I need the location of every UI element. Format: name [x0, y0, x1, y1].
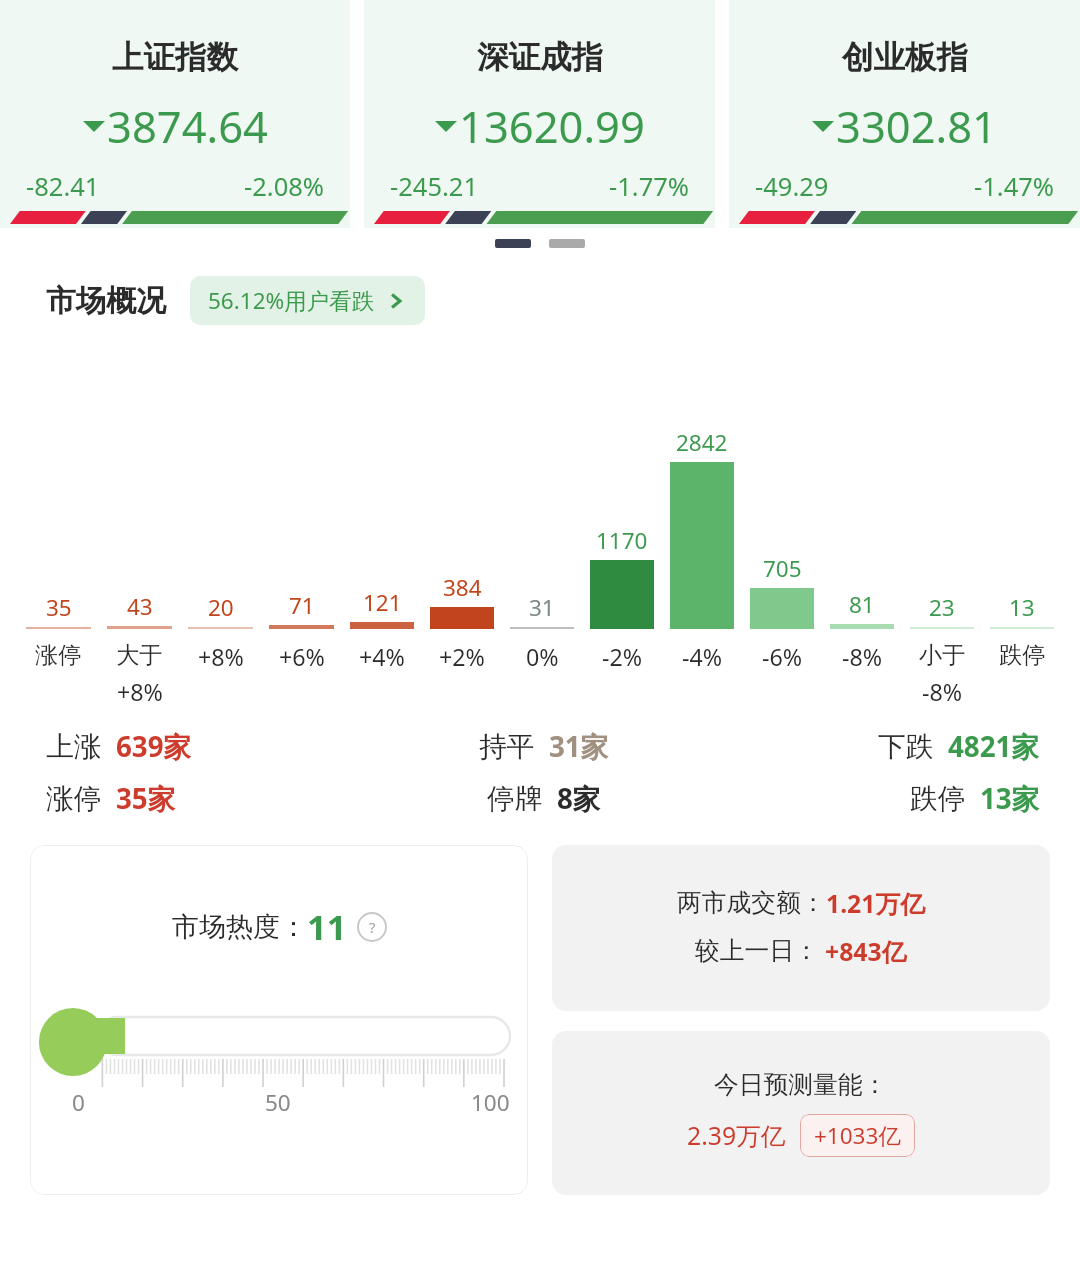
staticText: -1.47%: [974, 169, 1054, 204]
staticText: -49.29: [755, 169, 829, 204]
staticText: 3874.64: [107, 96, 268, 155]
staticText: +2%: [439, 641, 485, 673]
staticText: 35家: [116, 779, 176, 817]
staticText: 1170: [596, 525, 648, 556]
staticText: 小于: [919, 641, 966, 670]
staticText: 2.39万亿: [687, 1119, 786, 1153]
staticText: -2%: [602, 641, 643, 673]
staticText: +843亿: [825, 935, 907, 969]
staticText: 121: [363, 587, 402, 618]
staticText: 81: [849, 589, 875, 620]
staticText: 涨停: [46, 781, 102, 816]
staticText: 两市成交额：: [677, 887, 826, 918]
staticText: 跌停: [910, 781, 966, 816]
staticText: -2.08%: [244, 169, 324, 204]
button[interactable]: 上证指数: [0, 0, 350, 228]
staticText: 上涨: [46, 729, 102, 764]
staticText: 11: [307, 903, 347, 950]
button[interactable]: 创业板指: [729, 0, 1080, 228]
staticText: 20: [208, 592, 234, 623]
staticText: 13: [1009, 592, 1035, 623]
staticText: -6%: [762, 641, 803, 673]
staticText: 创业板指: [842, 38, 968, 78]
staticText: +1033亿: [814, 1120, 901, 1151]
button[interactable]: 深证成指: [364, 0, 715, 228]
staticText: 持平: [479, 729, 535, 764]
button[interactable]: 今日预测量能：: [552, 1031, 1050, 1195]
staticText: ?: [369, 917, 376, 937]
staticText: 50: [265, 1087, 291, 1118]
staticText: 1.21万亿: [826, 887, 925, 921]
staticText: -1.77%: [609, 169, 689, 204]
staticText: -8%: [922, 676, 963, 708]
staticText: 384: [443, 572, 482, 603]
staticText: +8%: [198, 641, 244, 673]
staticText: 56.12%用户看跌: [208, 285, 375, 316]
button[interactable]: 56.12%用户看跌: [190, 276, 425, 325]
staticText: 0%: [526, 641, 559, 673]
staticText: -82.41: [26, 169, 100, 204]
staticText: 705: [763, 553, 802, 584]
button[interactable]: 两市成交额：: [552, 845, 1050, 1011]
staticText: 100: [471, 1087, 510, 1118]
staticText: 35: [46, 592, 72, 623]
staticText: 跌停: [999, 641, 1046, 670]
staticText: 2842: [676, 427, 728, 458]
staticText: 大于: [116, 641, 163, 670]
staticText: 13家: [980, 779, 1040, 817]
staticText: 停牌: [487, 781, 543, 816]
staticText: 3302.81: [836, 96, 997, 155]
staticText: +8%: [117, 676, 163, 708]
staticText: 8家: [557, 779, 601, 817]
staticText: 4821家: [948, 727, 1040, 765]
staticText: +6%: [279, 641, 325, 673]
staticText: -4%: [682, 641, 723, 673]
staticText: 上证指数: [112, 38, 238, 78]
staticText: 31: [529, 592, 555, 623]
staticText: 31家: [549, 727, 609, 765]
staticText: 深证成指: [477, 38, 603, 78]
staticText: -245.21: [390, 169, 478, 204]
staticText: 今日预测量能：: [714, 1069, 888, 1100]
staticText: +4%: [359, 641, 405, 673]
staticText: 0: [72, 1087, 85, 1118]
staticText: 较上一日：: [695, 935, 819, 966]
staticText: 639家: [116, 727, 192, 765]
staticText: 71: [289, 590, 315, 621]
staticText: 13620.99: [459, 96, 645, 155]
staticText: -8%: [842, 641, 883, 673]
staticText: 下跌: [878, 729, 934, 764]
staticText: 市场热度：: [172, 910, 307, 944]
staticText: 43: [127, 591, 153, 622]
staticText: 23: [929, 592, 955, 623]
staticText: 涨停: [35, 641, 82, 670]
button[interactable]: 市场热度：: [30, 845, 528, 1195]
button[interactable]: 帮助: [357, 912, 387, 942]
staticText: 市场概况: [46, 282, 166, 320]
